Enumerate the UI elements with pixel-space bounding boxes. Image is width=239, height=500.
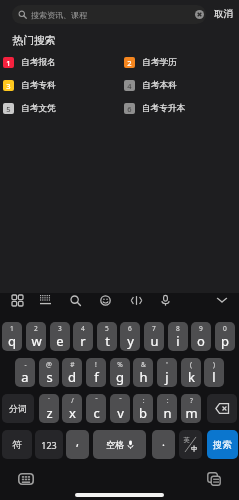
staticText: g <box>116 368 124 386</box>
staticText: f <box>94 368 99 386</box>
button[interactable]: ˉ <box>86 394 106 423</box>
staticText: 自考本科 <box>142 80 177 91</box>
button[interactable]: 搜索资讯、课程 <box>12 5 206 24</box>
button[interactable]: Backspace <box>207 394 237 423</box>
button[interactable]: 3 <box>3 80 113 91</box>
staticText: 取消 <box>214 8 233 20</box>
staticText: # <box>70 360 75 369</box>
button[interactable]: ˋ <box>39 394 59 423</box>
staticText: / <box>71 396 74 405</box>
staticText: v <box>117 404 124 422</box>
staticText: 5 <box>6 104 11 114</box>
button[interactable]: Search <box>64 289 86 311</box>
staticText: x <box>69 404 76 422</box>
button[interactable]: 取消 <box>209 4 238 24</box>
staticText: 自考专科 <box>21 80 56 91</box>
staticText: 自考专升本 <box>142 103 185 114</box>
button[interactable]: 9 <box>191 322 211 351</box>
staticText: 3 <box>58 324 62 333</box>
staticText: w <box>31 332 42 350</box>
staticText: % <box>117 360 123 369</box>
button[interactable]: @ <box>39 358 59 387</box>
staticText: 分词 <box>9 403 27 414</box>
button[interactable]: 1 <box>2 322 22 351</box>
button[interactable]: 3 <box>50 322 70 351</box>
staticText: 搜索 <box>213 439 232 451</box>
button[interactable]: 123 <box>35 430 63 459</box>
button[interactable]: 5 <box>97 322 117 351</box>
staticText: p <box>221 332 229 350</box>
staticText: j <box>165 368 169 386</box>
staticText: - <box>24 360 27 369</box>
staticText: y <box>127 332 134 350</box>
staticText: ' <box>166 360 168 369</box>
staticText: e <box>56 332 64 350</box>
button[interactable]: Emoji <box>94 289 116 311</box>
button[interactable]: % <box>110 358 130 387</box>
button[interactable]: 6 <box>120 322 140 351</box>
staticText: t <box>105 332 110 350</box>
staticText: 自考文凭 <box>21 103 56 114</box>
staticText: k <box>188 368 195 386</box>
button[interactable]: ' <box>157 358 177 387</box>
staticText: q <box>8 332 16 350</box>
button[interactable]: Collapse keyboard <box>211 289 233 311</box>
staticText: 2 <box>34 324 38 333</box>
button[interactable]: , <box>66 430 89 459</box>
button[interactable]: . <box>152 430 175 459</box>
staticText: ! <box>95 360 97 369</box>
button[interactable]: ) <box>204 358 224 387</box>
staticText: 1 <box>10 324 14 333</box>
button[interactable]: 搜索 <box>207 430 238 459</box>
button[interactable]: - <box>15 358 35 387</box>
button[interactable]: ? <box>181 394 201 423</box>
button[interactable]: Apps <box>6 289 28 311</box>
staticText: d <box>68 368 76 386</box>
button[interactable]: ( <box>181 358 201 387</box>
staticText: 5 <box>105 324 109 333</box>
staticText: a <box>21 368 29 386</box>
staticText: l <box>212 368 216 386</box>
staticText: u <box>150 332 159 350</box>
button[interactable]: & <box>133 358 153 387</box>
button[interactable]: 空格 <box>93 430 146 459</box>
button[interactable]: 4 <box>73 322 93 351</box>
staticText: ˉ <box>119 396 122 405</box>
button[interactable]: Voice input <box>154 289 176 311</box>
button[interactable]: 1 <box>3 57 113 68</box>
staticText: 7 <box>152 324 156 333</box>
staticText: , <box>76 434 79 449</box>
button[interactable]: ˉ <box>110 394 130 423</box>
button[interactable]: ! <box>86 358 106 387</box>
button[interactable]: Clipboard <box>203 468 225 490</box>
button[interactable]: / <box>62 394 82 423</box>
button[interactable]: ː <box>157 394 177 423</box>
button[interactable]: Switch language <box>179 430 202 459</box>
staticText: 4 <box>81 324 85 333</box>
staticText: @ <box>46 360 52 369</box>
button[interactable]: Clear text <box>192 7 206 21</box>
button[interactable]: 7 <box>144 322 164 351</box>
staticText: 6 <box>127 104 132 114</box>
button[interactable]: 6 <box>124 103 234 114</box>
staticText: 8 <box>176 324 180 333</box>
button[interactable]: ː <box>133 394 153 423</box>
staticText: ː <box>142 396 145 405</box>
staticText: 搜索资讯、课程 <box>31 10 87 20</box>
staticText: 1 <box>6 58 11 68</box>
button[interactable]: Switch keyboard <box>15 468 37 490</box>
button[interactable]: 2 <box>26 322 46 351</box>
staticText: z <box>46 404 53 422</box>
button[interactable]: 分词 <box>2 394 34 423</box>
button[interactable]: 4 <box>124 80 234 91</box>
staticText: b <box>139 404 147 422</box>
button[interactable]: # <box>62 358 82 387</box>
staticText: s <box>46 368 53 386</box>
button[interactable]: 5 <box>3 103 113 114</box>
button[interactable]: Keyboard layout <box>34 289 56 311</box>
button[interactable]: 2 <box>124 57 234 68</box>
button[interactable]: Code input <box>125 289 147 311</box>
button[interactable]: 0 <box>215 322 235 351</box>
button[interactable]: 8 <box>168 322 188 351</box>
button[interactable]: 符 <box>2 430 32 459</box>
